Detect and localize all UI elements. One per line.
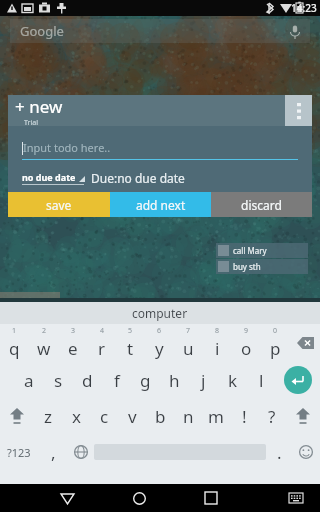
button[interactable]: g — [131, 362, 160, 398]
button[interactable]: call Mary — [216, 243, 308, 258]
button[interactable]: 2 — [29, 324, 58, 362]
staticText: j — [201, 369, 206, 392]
staticText: g — [140, 369, 151, 392]
button[interactable]: n — [174, 398, 202, 434]
button[interactable]: 4 — [87, 324, 116, 362]
button[interactable]: no due date — [22, 171, 85, 185]
staticText: + new — [15, 95, 63, 118]
button[interactable]: Shift — [286, 398, 320, 434]
staticText: w — [37, 337, 51, 360]
staticText: q — [9, 337, 20, 360]
button[interactable]: m — [202, 398, 230, 434]
button[interactable]: Backspace — [290, 324, 320, 362]
staticText: o — [241, 337, 252, 360]
button[interactable]: c — [90, 398, 118, 434]
staticText: discard — [241, 197, 282, 213]
staticText: 9 — [244, 326, 249, 336]
staticText: t — [127, 337, 134, 360]
staticText: 0 — [273, 326, 278, 336]
staticText: m — [208, 405, 224, 428]
button[interactable]: f — [102, 362, 131, 398]
button[interactable]: computer — [0, 302, 320, 324]
button[interactable]: ! — [230, 398, 258, 434]
button[interactable]: + new — [8, 95, 285, 126]
button[interactable]: l — [247, 362, 276, 398]
staticText: y — [155, 337, 164, 360]
staticText: save — [46, 197, 72, 213]
button[interactable]: 5 — [116, 324, 145, 362]
staticText: 8 — [215, 326, 220, 336]
button[interactable]: More options — [285, 95, 312, 126]
staticText: 5 — [128, 326, 133, 336]
button[interactable]: Shift — [0, 398, 34, 434]
button[interactable]: 8 — [203, 324, 232, 362]
staticText: s — [54, 369, 63, 392]
staticText: 1 — [12, 326, 17, 336]
button[interactable]: Recent apps — [194, 484, 228, 512]
button[interactable]: v — [118, 398, 146, 434]
button[interactable]: ?123 — [0, 434, 38, 470]
staticText: h — [169, 369, 180, 392]
button[interactable]: , — [38, 434, 68, 470]
button[interactable]: save — [8, 192, 110, 217]
staticText: z — [44, 405, 52, 428]
staticText: 3 — [71, 326, 76, 336]
staticText: , — [51, 441, 56, 464]
button[interactable]: Home — [122, 484, 156, 512]
staticText: l — [259, 369, 264, 392]
button[interactable]: k — [218, 362, 247, 398]
staticText: 7 — [186, 326, 191, 336]
button[interactable]: z — [34, 398, 62, 434]
button[interactable]: Change language — [68, 434, 94, 470]
staticText: x — [72, 405, 81, 428]
button[interactable]: b — [146, 398, 174, 434]
button[interactable]: Enter — [276, 362, 320, 398]
staticText: 14:23 — [291, 1, 317, 15]
staticText: ?123 — [7, 445, 31, 460]
button[interactable]: ? — [258, 398, 286, 434]
staticText: e — [68, 337, 78, 360]
button[interactable]: 0 — [261, 324, 290, 362]
button[interactable]: Google — [10, 19, 310, 43]
button[interactable]: d — [73, 362, 102, 398]
staticText: Due:no due date — [91, 170, 185, 186]
staticText: 4 — [100, 326, 105, 336]
button[interactable]: 6 — [145, 324, 174, 362]
button[interactable]: Emoji — [292, 434, 320, 470]
staticText: call Mary — [233, 245, 267, 256]
staticText: no due date — [22, 171, 76, 183]
button[interactable]: . — [266, 434, 292, 470]
button[interactable]: a — [14, 362, 44, 398]
staticText: computer — [132, 305, 188, 321]
button[interactable]: add next — [110, 192, 211, 217]
staticText: c — [100, 405, 109, 428]
button[interactable]: 3 — [58, 324, 87, 362]
staticText: Google — [20, 22, 64, 40]
staticText: d — [82, 369, 93, 392]
staticText: ! — [242, 405, 247, 428]
staticText: 2 — [42, 326, 47, 336]
staticText: a — [24, 369, 34, 392]
staticText: n — [183, 405, 194, 428]
staticText: r — [98, 337, 106, 360]
staticText: v — [128, 405, 137, 428]
button[interactable]: x — [62, 398, 90, 434]
button[interactable]: 7 — [174, 324, 203, 362]
button[interactable]: 9 — [232, 324, 261, 362]
button[interactable]: buy sth — [216, 259, 308, 274]
button[interactable]: 1 — [0, 324, 29, 362]
button[interactable]: discard — [211, 192, 312, 217]
button[interactable]: Switch keyboard — [281, 484, 311, 512]
button[interactable]: s — [44, 362, 73, 398]
staticText: u — [183, 337, 194, 360]
staticText: ? — [268, 405, 276, 428]
button[interactable]: j — [189, 362, 218, 398]
staticText: . — [277, 441, 282, 464]
staticText: add next — [136, 197, 186, 213]
button[interactable]: Back — [50, 484, 84, 512]
staticText: b — [155, 405, 166, 428]
staticText: i — [215, 337, 220, 360]
staticText: Input todo here.. — [23, 140, 111, 155]
button[interactable]: h — [160, 362, 189, 398]
